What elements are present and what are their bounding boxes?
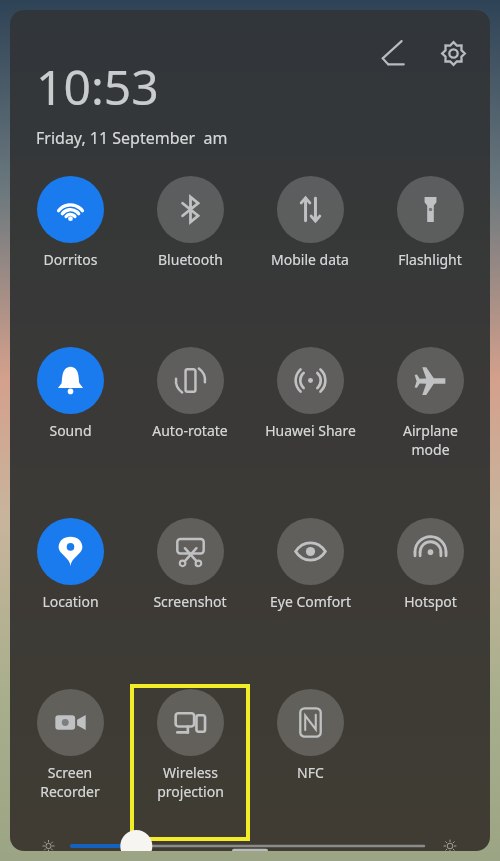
- button[interactable]: Lower brightness: [28, 841, 68, 851]
- staticText: Dorritos: [43, 250, 98, 269]
- button[interactable]: Screenshot: [130, 513, 250, 611]
- staticText: Screen Recorder: [40, 763, 100, 801]
- button[interactable]: NFC: [250, 684, 370, 782]
- button[interactable]: Wireless projection: [130, 684, 250, 801]
- staticText: Mobile data: [271, 250, 349, 269]
- button[interactable]: Auto-rotate: [130, 342, 250, 440]
- button[interactable]: Screen Recorder: [10, 684, 130, 801]
- staticText: Location: [42, 592, 99, 611]
- staticText: Friday, 11 September am: [36, 127, 228, 149]
- staticText: Airplane mode: [403, 421, 458, 459]
- button[interactable]: Eye Comfort: [250, 513, 370, 611]
- staticText: Hotspot: [404, 592, 457, 611]
- staticText: Flashlight: [398, 250, 462, 269]
- button[interactable]: Edit: [370, 30, 416, 76]
- button[interactable]: Mobile data: [250, 171, 370, 269]
- button[interactable]: Settings: [430, 30, 476, 76]
- staticText: Screenshot: [153, 592, 227, 611]
- button[interactable]: Dorritos: [10, 171, 130, 269]
- button[interactable]: Location: [10, 513, 130, 611]
- staticText: Auto-rotate: [152, 421, 228, 440]
- staticText: Wireless projection: [157, 763, 224, 801]
- button[interactable]: Hotspot: [370, 513, 490, 611]
- staticText: 10:53: [36, 54, 159, 119]
- staticText: Eye Comfort: [270, 592, 351, 611]
- button[interactable]: Sound: [10, 342, 130, 440]
- button[interactable]: Huawei Share: [250, 342, 370, 440]
- staticText: Sound: [49, 421, 92, 440]
- button[interactable]: Raise brightness: [428, 841, 472, 851]
- staticText: NFC: [297, 763, 324, 782]
- staticText: Huawei Share: [265, 421, 356, 440]
- staticText: Bluetooth: [158, 250, 223, 269]
- button[interactable]: Bluetooth: [130, 171, 250, 269]
- button[interactable]: Brightness slider: [68, 841, 428, 851]
- button[interactable]: Flashlight: [370, 171, 490, 269]
- button[interactable]: Airplane mode: [370, 342, 490, 459]
